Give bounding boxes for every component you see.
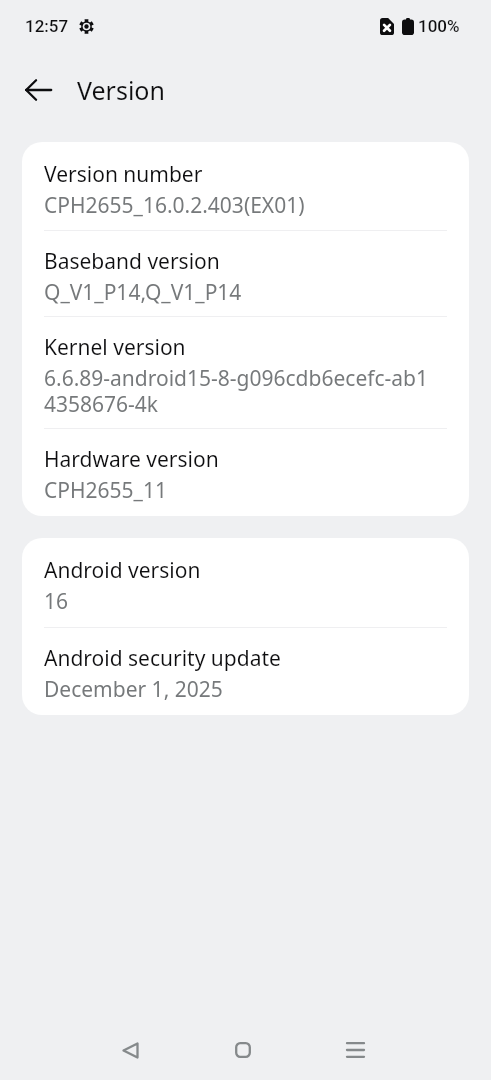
staticText: Version number (44, 160, 203, 189)
button[interactable]: Back (14, 66, 62, 114)
staticText: Hardware version (44, 445, 219, 474)
staticText: Baseband version (44, 247, 220, 276)
button[interactable]: Android version (22, 540, 469, 628)
staticText: 6.6.89-android15-8-g096cdb6ecefc-ab1 435… (44, 364, 429, 419)
button[interactable]: Kernel version (22, 317, 469, 429)
staticText: Android version (44, 556, 201, 585)
staticText: 12:57 (25, 16, 69, 36)
staticText: Android security update (44, 644, 281, 673)
staticText: Q_V1_P14,Q_V1_P14 (44, 278, 242, 307)
staticText: December 1, 2025 (44, 675, 223, 704)
button[interactable]: Home (219, 1026, 267, 1074)
button[interactable]: Hardware version (22, 429, 469, 514)
staticText: 100% (418, 16, 460, 36)
staticText: Kernel version (44, 333, 186, 362)
staticText: CPH2655_16.0.2.403(EX01) (44, 191, 305, 220)
button[interactable]: Back (106, 1026, 154, 1074)
staticText: CPH2655_11 (44, 476, 167, 505)
button[interactable]: Android security update (22, 628, 469, 713)
button[interactable]: Baseband version (22, 231, 469, 317)
button[interactable]: Version number (22, 144, 469, 231)
staticText: 16 (44, 587, 69, 616)
button[interactable]: Recent apps (331, 1026, 379, 1074)
staticText: Version (77, 73, 165, 107)
